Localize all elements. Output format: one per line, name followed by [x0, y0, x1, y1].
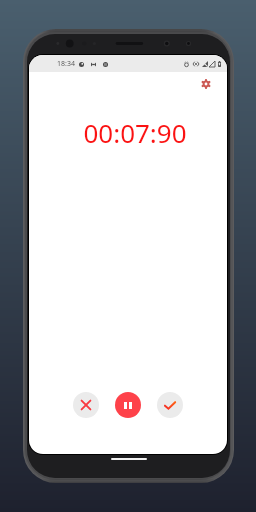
button[interactable]: Settings — [197, 75, 215, 93]
button[interactable]: Done — [157, 392, 183, 418]
button[interactable]: Pause — [115, 392, 141, 418]
staticText: 00:07:90 — [36, 115, 227, 150]
button[interactable]: Cancel — [73, 392, 99, 418]
staticText: 18:34 — [57, 59, 75, 69]
